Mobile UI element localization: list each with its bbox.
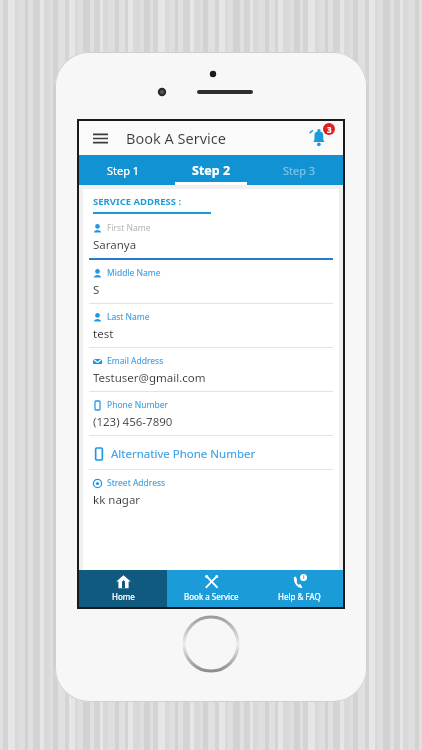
- staticText: Step 1: [107, 163, 140, 178]
- button[interactable]: Alternative Phone Number: [83, 440, 339, 474]
- staticText: Email Address: [107, 355, 164, 367]
- button[interactable]: Step 1: [79, 155, 167, 185]
- button[interactable]: Street Address: [83, 474, 339, 517]
- staticText: Street Address: [107, 477, 166, 489]
- staticText: S: [93, 282, 100, 298]
- staticText: Alternative Phone Number: [111, 446, 256, 462]
- staticText: Last Name: [107, 311, 150, 323]
- staticText: Saranya: [93, 237, 137, 253]
- button[interactable]: First Name: [83, 219, 339, 264]
- staticText: i: [303, 574, 305, 581]
- button[interactable]: Phone Number: [83, 396, 339, 440]
- button[interactable]: Middle Name: [83, 264, 339, 308]
- button[interactable]: Notifications: [305, 123, 335, 153]
- staticText: Phone Number: [107, 399, 168, 411]
- button[interactable]: Email Address: [83, 352, 339, 396]
- button[interactable]: Home: [79, 570, 167, 607]
- staticText: First Name: [107, 222, 151, 234]
- staticText: Step 3: [283, 163, 316, 178]
- button[interactable]: i: [255, 570, 343, 607]
- staticText: Home: [112, 591, 135, 602]
- button[interactable]: Step 3: [255, 155, 343, 185]
- staticText: 3: [327, 124, 332, 135]
- staticText: Book A Service: [126, 128, 226, 148]
- button[interactable]: Book a Service: [167, 570, 255, 607]
- button[interactable]: Menu: [87, 125, 113, 151]
- staticText: test: [93, 326, 114, 342]
- staticText: Step 2: [192, 162, 231, 179]
- staticText: Help & FAQ: [278, 591, 321, 602]
- button[interactable]: Last Name: [83, 308, 339, 352]
- staticText: Testuser@gmail.com: [93, 370, 206, 386]
- staticText: kk nagar: [93, 492, 141, 508]
- staticText: (123) 456-7890: [93, 414, 173, 430]
- staticText: SERVICE ADDRESS :: [93, 195, 182, 208]
- staticText: Book a Service: [184, 591, 239, 602]
- button[interactable]: Step 2: [167, 155, 255, 185]
- staticText: Middle Name: [107, 267, 161, 279]
